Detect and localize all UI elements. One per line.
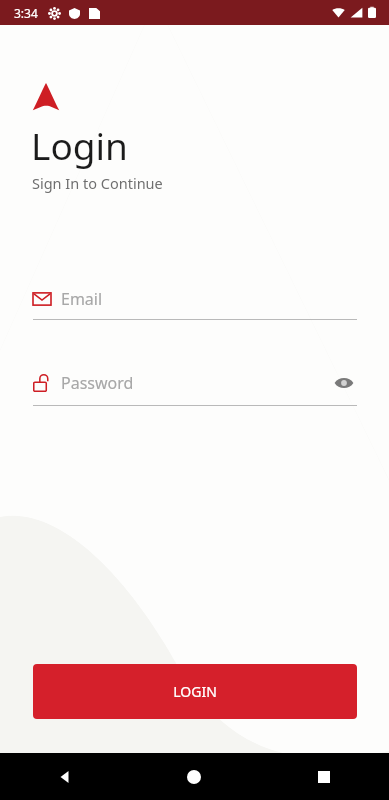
staticText: LOGIN: [173, 682, 217, 701]
button[interactable]: Show password: [331, 370, 357, 396]
staticText: Email: [61, 288, 357, 310]
button[interactable]: LOGIN: [33, 664, 357, 719]
staticText: 3:34: [14, 5, 38, 21]
button[interactable]: Email: [33, 288, 357, 320]
button[interactable]: Password: [33, 370, 357, 406]
button[interactable]: Recent apps: [259, 753, 389, 800]
staticText: Sign In to Continue: [32, 173, 163, 193]
staticText: Password: [61, 372, 331, 394]
staticText: Login: [31, 120, 128, 170]
button[interactable]: Back: [0, 753, 129, 800]
button[interactable]: Home: [129, 753, 259, 800]
